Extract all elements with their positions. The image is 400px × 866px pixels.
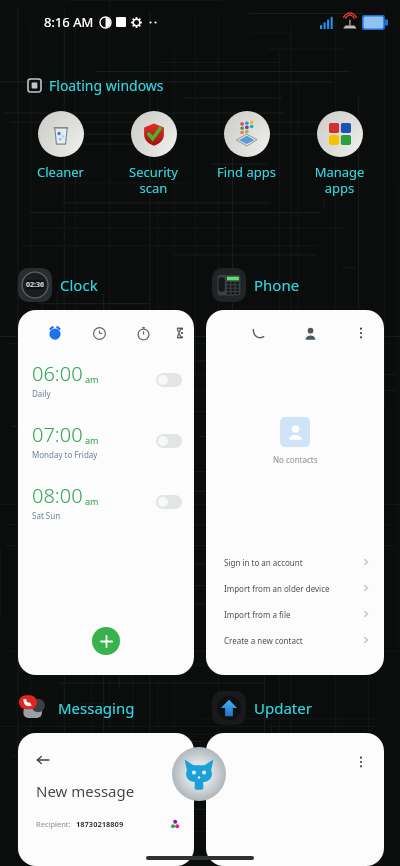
button[interactable]: 07:00: [18, 421, 194, 460]
staticText: New message: [36, 781, 135, 801]
staticText: am: [85, 373, 99, 385]
staticText: Daily: [32, 388, 51, 399]
other: Cleaner: [38, 111, 84, 157]
staticText: Floating windows: [49, 76, 164, 95]
button[interactable]: Alarm: [44, 322, 66, 344]
button[interactable]: Phone: [212, 268, 300, 302]
staticText: Manage apps: [293, 163, 386, 196]
button[interactable]: Find apps: [200, 111, 293, 181]
staticText: 07:00: [32, 421, 83, 448]
staticText: Security scan: [107, 163, 200, 196]
other: Security scan: [131, 111, 177, 157]
button[interactable]: Import from a file: [206, 601, 384, 627]
staticText: Recipient:: [36, 819, 71, 829]
button[interactable]: Dial: [247, 322, 269, 344]
button[interactable]: Contacts: [299, 322, 321, 344]
button[interactable]: Timer: [176, 322, 182, 344]
staticText: Import from a file: [224, 609, 291, 620]
staticText: 02:36: [26, 280, 44, 290]
staticText: Sign in to an account: [224, 557, 303, 568]
button[interactable]: Add alarm: [92, 627, 120, 655]
button[interactable]: Toggle alarm 08:00: [156, 495, 182, 509]
staticText: Updater: [254, 698, 312, 718]
button[interactable]: 08:00: [18, 482, 194, 521]
staticText: am: [85, 434, 99, 446]
button[interactable]: World clock: [88, 322, 110, 344]
staticText: am: [85, 495, 99, 507]
button[interactable]: Toggle alarm 06:00: [156, 373, 182, 387]
other: Manage apps: [317, 111, 363, 157]
staticText: 8:16 AM: [44, 13, 94, 31]
staticText: Phone: [254, 275, 300, 295]
button[interactable]: More options: [350, 322, 372, 344]
staticText: 08:00: [32, 482, 83, 509]
button[interactable]: Sign in to an account: [206, 549, 384, 575]
other: Find apps: [224, 111, 270, 157]
staticText: Import from an older device: [224, 583, 330, 594]
button[interactable]: Import from an older device: [206, 575, 384, 601]
button[interactable]: Security scan: [107, 111, 200, 196]
staticText: 18730218809: [76, 819, 124, 829]
staticText: Clock: [60, 275, 98, 295]
button[interactable]: 02:36: [18, 268, 98, 302]
staticText: Monday to Friday: [32, 449, 98, 460]
staticText: Cleaner: [14, 163, 107, 181]
staticText: Create a new contact: [224, 635, 303, 646]
button[interactable]: Stopwatch: [132, 322, 154, 344]
button[interactable]: Floating windows: [28, 76, 164, 95]
staticText: No contacts: [273, 454, 318, 465]
button[interactable]: Updater: [212, 691, 312, 725]
button[interactable]: Cleaner: [14, 111, 107, 181]
button[interactable]: More options: [350, 751, 372, 773]
button[interactable]: Create a new contact: [206, 627, 384, 653]
button[interactable]: Messaging: [16, 691, 135, 725]
button[interactable]: Assistant: [172, 747, 226, 801]
staticText: 06:00: [32, 360, 83, 387]
button[interactable]: Back: [32, 749, 54, 771]
button[interactable]: Manage apps: [293, 111, 386, 196]
staticText: Messaging: [58, 698, 135, 718]
staticText: Find apps: [200, 163, 293, 181]
staticText: Sat Sun: [32, 510, 61, 521]
button[interactable]: 06:00: [18, 360, 194, 399]
button[interactable]: Toggle alarm 07:00: [156, 434, 182, 448]
